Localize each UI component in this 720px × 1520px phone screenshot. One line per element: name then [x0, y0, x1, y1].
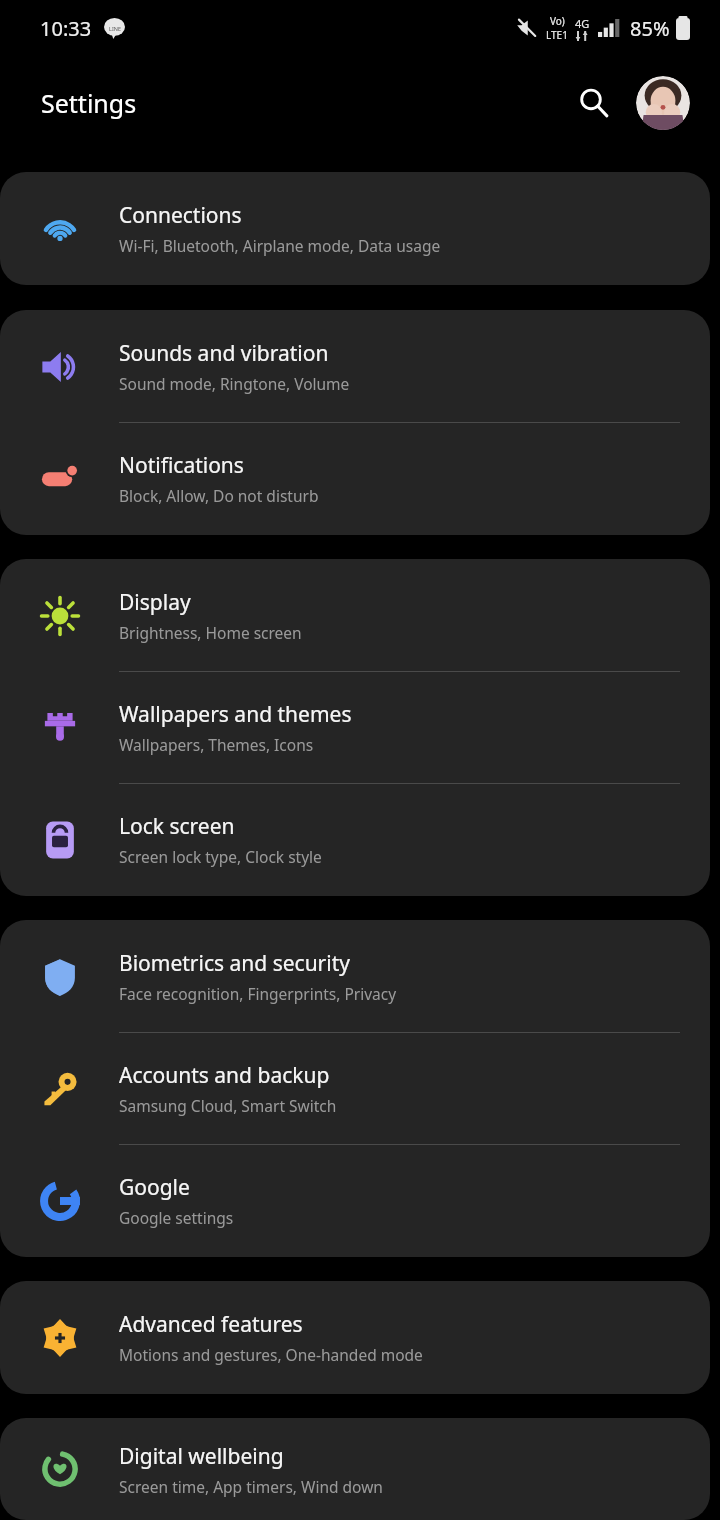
button[interactable]: Connections: [0, 173, 710, 284]
staticText: 4G: [575, 16, 590, 31]
staticText: Samsung Cloud, Smart Switch: [119, 1095, 337, 1116]
staticText: Face recognition, Fingerprints, Privacy: [119, 983, 397, 1004]
staticText: Block, Allow, Do not disturb: [119, 485, 319, 506]
staticText: Settings: [41, 86, 137, 120]
staticText: Google: [119, 1173, 190, 1202]
staticText: Accounts and backup: [119, 1061, 330, 1090]
staticText: Sound mode, Ringtone, Volume: [119, 373, 350, 394]
staticText: Wi-Fi, Bluetooth, Airplane mode, Data us…: [119, 235, 441, 256]
staticText: Screen lock type, Clock style: [119, 846, 322, 867]
button[interactable]: Wallpapers and themes: [0, 672, 710, 784]
button[interactable]: Sounds and vibration: [0, 311, 710, 423]
staticText: Wallpapers, Themes, Icons: [119, 734, 314, 755]
staticText: Sounds and vibration: [119, 339, 329, 368]
staticText: Brightness, Home screen: [119, 622, 302, 643]
staticText: Biometrics and security: [119, 949, 350, 978]
button[interactable]: Advanced features: [0, 1282, 710, 1393]
staticText: Lock screen: [119, 812, 235, 841]
staticText: Motions and gestures, One-handed mode: [119, 1344, 423, 1365]
staticText: Screen time, App timers, Wind down: [119, 1476, 383, 1497]
staticText: 10:33: [40, 15, 92, 42]
button[interactable]: Google: [0, 1145, 710, 1256]
staticText: LTE1: [546, 28, 568, 42]
staticText: Advanced features: [119, 1310, 303, 1339]
staticText: Vo): [550, 14, 565, 28]
button[interactable]: Notifications: [0, 423, 710, 534]
staticText: Wallpapers and themes: [119, 700, 352, 729]
staticText: Display: [119, 588, 191, 617]
staticText: Connections: [119, 201, 242, 230]
staticText: 85%: [630, 15, 670, 42]
button[interactable]: Display: [0, 560, 710, 672]
button[interactable]: Biometrics and security: [0, 921, 710, 1033]
button[interactable]: Profile: [636, 76, 690, 130]
button[interactable]: Lock screen: [0, 784, 710, 895]
staticText: LINE: [109, 25, 121, 32]
button[interactable]: Digital wellbeing: [0, 1419, 710, 1519]
button[interactable]: Search: [566, 75, 622, 131]
staticText: Digital wellbeing: [119, 1442, 284, 1471]
button[interactable]: Accounts and backup: [0, 1033, 710, 1145]
staticText: Google settings: [119, 1207, 234, 1228]
staticText: Notifications: [119, 451, 244, 480]
